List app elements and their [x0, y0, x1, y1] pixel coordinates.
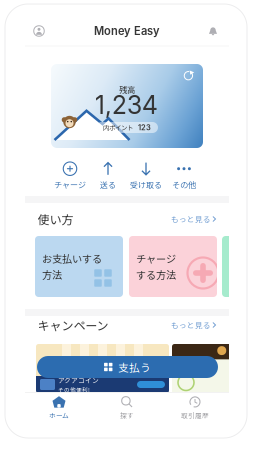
button[interactable] [222, 236, 253, 297]
staticText: 1,234 [95, 90, 158, 120]
button[interactable]: 探す [97, 396, 157, 420]
staticText: アクアコイン [58, 375, 99, 385]
staticText: 探す [120, 410, 134, 420]
staticText: 取引履歴 [181, 410, 209, 420]
button[interactable]: Refresh balance [182, 69, 195, 82]
staticText: 受け取る [130, 179, 162, 190]
button[interactable]: チャージ [52, 163, 88, 189]
button[interactable]: ホーム [29, 396, 89, 420]
staticText: Money Easy [94, 24, 160, 38]
button[interactable]: Notifications [205, 22, 221, 40]
staticText: 残高 [119, 83, 135, 95]
staticText: もっと見る [171, 319, 211, 331]
staticText: ホーム [49, 410, 69, 420]
button[interactable]: もっと見る [171, 319, 216, 331]
staticText: お支払いする [42, 251, 102, 266]
button[interactable]: 支払う [37, 356, 218, 378]
staticText: 送る [100, 179, 116, 190]
button[interactable]: チャージ [129, 236, 217, 297]
staticText: チャージ [54, 179, 86, 190]
button[interactable]: その他 [166, 163, 202, 189]
staticText: チャージ [136, 251, 176, 266]
staticText: その他便利! [58, 385, 90, 394]
button[interactable]: 取引履歴 [165, 396, 225, 420]
staticText: 支払う [118, 359, 151, 375]
staticText: 内ポイント [103, 123, 133, 132]
button[interactable]: もっと見る [171, 213, 216, 225]
staticText: する方法 [136, 267, 176, 282]
button[interactable]: 受け取る [128, 163, 164, 189]
staticText: キャンペーン [37, 316, 108, 334]
button[interactable]: アクアコイン [36, 344, 169, 393]
staticText: 方法 [42, 267, 62, 282]
button[interactable]: 送る [90, 163, 126, 189]
button[interactable]: Account [30, 22, 48, 40]
button[interactable]: ルユ [172, 344, 253, 393]
staticText: もっと見る [171, 213, 211, 225]
staticText: 使い方 [37, 210, 73, 228]
button[interactable]: お支払いする [35, 236, 123, 297]
staticText: 123 [138, 123, 151, 132]
staticText: その他 [172, 179, 196, 190]
